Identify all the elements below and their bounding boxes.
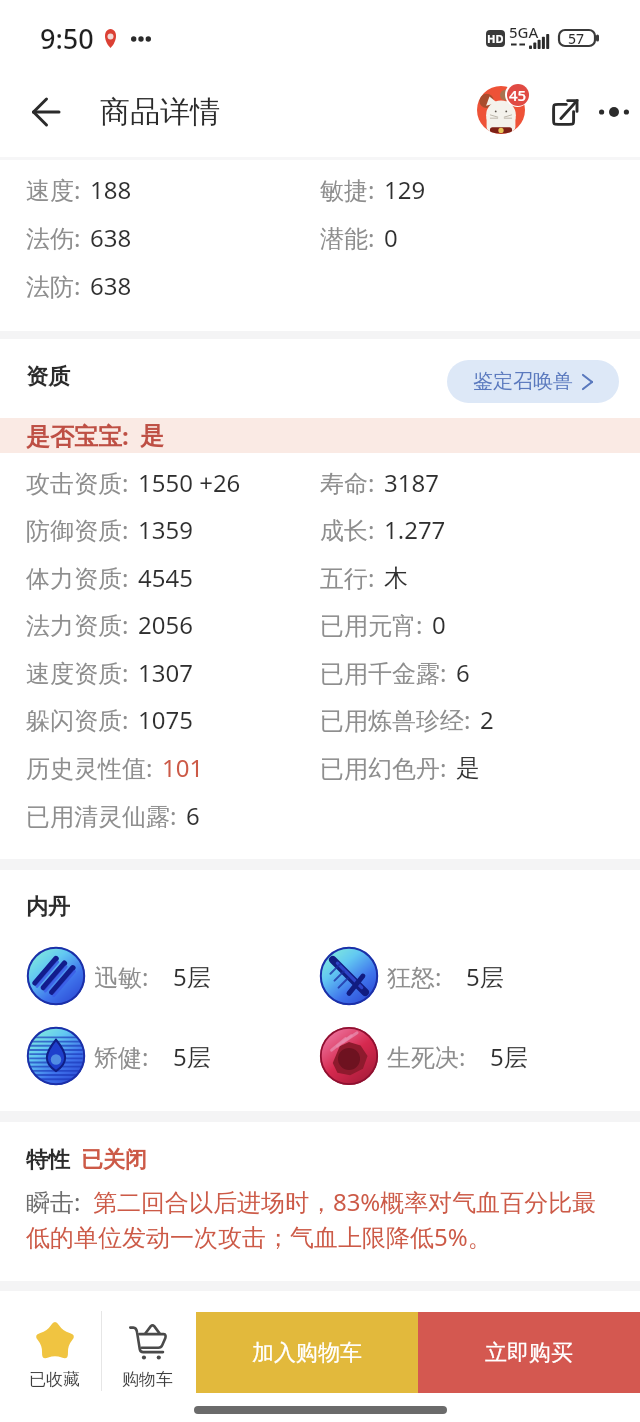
staticText: 6 [186,799,200,832]
staticText: 已用元宵: [320,608,423,641]
staticText: 五行: [320,561,375,594]
staticText: 商品详情 [100,93,220,131]
staticText: 已关闭 [81,1146,147,1174]
staticText: 瞬击: 第二回合以后进场时，83%概率对气血百分比最低的单位发动一次攻击；气血上… [26,1185,610,1253]
staticText: 已收藏 [29,1369,80,1390]
staticText: 已用幻色丹: [320,751,447,784]
staticText: 57 [568,29,585,47]
staticText: 5层 [173,1040,211,1073]
staticText: 2 [480,703,494,736]
staticText: 矫健: [94,1040,149,1073]
staticText: 2056 [138,608,193,641]
staticText: 638 [90,269,132,302]
staticText: 法防: [26,269,81,302]
staticText: 3187 [384,466,439,499]
staticText: 寿命: [320,466,375,499]
staticText: 敏捷: [320,173,375,206]
staticText: 攻击资质: [26,466,129,499]
button[interactable]: 立即购买 [418,1312,640,1393]
staticText: 速度资质: [26,656,129,689]
button[interactable]: Back [14,74,78,149]
staticText: 立即购买 [485,1339,573,1367]
button[interactable]: 已收藏 [0,1291,101,1397]
staticText: 9:50 [40,20,94,57]
staticText: 木 [384,563,408,593]
staticText: 1075 [138,703,193,736]
staticText: 特性 [26,1146,70,1174]
staticText: 鉴定召唤兽 [473,369,573,394]
staticText: 0 [432,608,446,641]
button[interactable]: 购物车 [102,1291,196,1397]
staticText: 0 [384,221,398,254]
staticText: 5层 [466,960,504,993]
staticText: 是 [456,753,480,783]
staticText: 5层 [173,960,211,993]
staticText: 5GA [509,22,539,42]
staticText: 生死决: [387,1040,466,1073]
staticText: 防御资质: [26,513,129,546]
staticText: 101 [162,751,204,784]
button[interactable]: 鉴定召唤兽 [447,360,619,403]
staticText: 历史灵性值: [26,751,153,784]
staticText: 188 [90,173,132,206]
staticText: 6 [456,656,470,689]
staticText: 1550 +26 [138,466,241,499]
staticText: 45 [509,85,527,105]
staticText: 躲闪资质: [26,703,129,736]
staticText: 638 [90,221,132,254]
staticText: HD [487,31,504,46]
staticText: 已用清灵仙露: [26,799,177,832]
staticText: 潜能: [320,221,375,254]
button[interactable]: More options [588,82,640,142]
staticText: 是 [140,421,164,451]
staticText: 迅敏: [94,960,149,993]
staticText: 法力资质: [26,608,129,641]
staticText: 已用炼兽珍经: [320,703,471,736]
staticText: 1307 [138,656,193,689]
staticText: 内丹 [26,893,70,921]
staticText: 狂怒: [387,960,442,993]
staticText: 4545 [138,561,193,594]
button[interactable]: Share [542,82,588,142]
staticText: 体力资质: [26,561,129,594]
staticText: 购物车 [122,1369,173,1390]
staticText: 法伤: [26,221,81,254]
staticText: 是否宝宝: [26,419,129,452]
staticText: 129 [384,173,426,206]
staticText: 1.277 [384,513,446,546]
staticText: 成长: [320,513,375,546]
staticText: 5层 [490,1040,528,1073]
button[interactable]: Account [466,78,536,153]
staticText: 已用千金露: [320,656,447,689]
staticText: 加入购物车 [252,1339,362,1367]
staticText: 速度: [26,173,81,206]
staticText: 1359 [138,513,193,546]
button[interactable]: 加入购物车 [196,1312,418,1393]
staticText: 资质 [26,363,70,391]
